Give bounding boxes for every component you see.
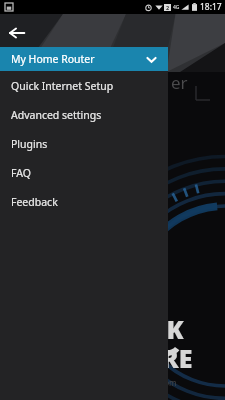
staticText: KOOK <box>110 312 184 346</box>
staticText: My Home Router <box>11 52 95 66</box>
staticText: 4G <box>173 4 180 11</box>
staticText: 18:17 <box>200 1 222 13</box>
button[interactable]: My Home Router <box>0 47 168 71</box>
button[interactable]: Plugins <box>0 129 168 158</box>
staticText: Plugins <box>11 137 48 151</box>
staticText: www.xiazaiba.com <box>107 377 177 388</box>
staticText: Feedback <box>11 195 58 209</box>
staticText: Advanced settings <box>11 108 102 122</box>
button[interactable]: Back <box>3 19 31 47</box>
button[interactable]: Feedback <box>0 187 168 216</box>
staticText: er <box>171 71 188 94</box>
button[interactable]: Advanced settings <box>0 100 168 129</box>
button[interactable]: Quick Internet Setup <box>0 71 168 100</box>
staticText: SHARE <box>110 341 193 375</box>
staticText: Quick Internet Setup <box>11 79 114 93</box>
staticText: FAQ <box>11 166 31 180</box>
staticText: 2 <box>166 4 170 11</box>
button[interactable]: FAQ <box>0 158 168 187</box>
